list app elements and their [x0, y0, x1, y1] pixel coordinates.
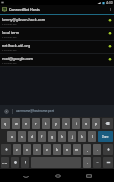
button[interactable]: netlhack.util.org [0, 41, 114, 53]
staticText: r [35, 121, 37, 126]
button[interactable]: ?123 [1, 157, 9, 168]
button[interactable]: z [13, 144, 21, 155]
button[interactable]: Back [19, 169, 32, 182]
button[interactable]: n [63, 144, 71, 155]
button[interactable]: p [92, 118, 100, 129]
button[interactable]: c [33, 144, 41, 155]
button[interactable]: Recent apps [82, 169, 95, 182]
button[interactable]: x [23, 144, 31, 155]
staticText: username@hostname:port [16, 109, 54, 113]
staticText: o [85, 121, 88, 126]
staticText: g [51, 134, 54, 139]
staticText: s [21, 134, 23, 139]
staticText: 3 minutes ago [2, 36, 17, 39]
button[interactable]: More options [106, 5, 114, 14]
button[interactable]: q [1, 118, 10, 129]
button[interactable]: l [88, 131, 96, 142]
button[interactable]: g [48, 131, 56, 142]
button[interactable]: Delete [102, 118, 113, 129]
button[interactable]: f [38, 131, 46, 142]
staticText: Done [102, 135, 109, 139]
button[interactable]: j [68, 131, 76, 142]
button[interactable]: v [43, 144, 51, 155]
button[interactable]: k [78, 131, 86, 142]
staticText: local term [2, 30, 20, 35]
staticText: w [15, 121, 18, 126]
button[interactable]: w [12, 118, 20, 129]
staticText: t [45, 121, 47, 126]
button[interactable]: s [18, 131, 26, 142]
staticText: q [4, 121, 7, 126]
button[interactable]: . [83, 157, 91, 168]
staticText: p [95, 121, 98, 126]
button[interactable]: local term [0, 28, 114, 40]
button[interactable]: Input settings [3, 108, 10, 115]
staticText: y [55, 121, 57, 126]
staticText: e [25, 121, 27, 126]
button[interactable]: Emoji [11, 157, 19, 168]
staticText: d [31, 134, 34, 139]
staticText: z [16, 147, 18, 152]
staticText: l [92, 134, 93, 139]
staticText: netlhack.util.org [2, 43, 31, 48]
button[interactable]: , [83, 144, 91, 155]
staticText: kenny@gibson.hack.com [2, 17, 46, 22]
button[interactable]: r [32, 118, 40, 129]
staticText: root@google.com [2, 56, 34, 61]
button[interactable]: Home [51, 169, 64, 182]
staticText: f [41, 134, 43, 139]
staticText: ?123 [2, 161, 8, 164]
staticText: 3 minutes ago [2, 62, 17, 65]
staticText: k [81, 134, 83, 139]
button[interactable]: e [22, 118, 30, 129]
staticText: h [61, 134, 64, 139]
button[interactable]: Shift [1, 144, 11, 155]
button[interactable]: t [42, 118, 50, 129]
button[interactable]: root@google.com [0, 54, 114, 66]
staticText: a [11, 134, 13, 139]
button[interactable]: Done [98, 131, 113, 142]
button[interactable]: m [73, 144, 81, 155]
button[interactable]: u [62, 118, 70, 129]
staticText: n [66, 147, 69, 152]
staticText: . [97, 147, 98, 152]
staticText: 3 minutes ago [2, 49, 17, 52]
staticText: m [75, 147, 79, 152]
staticText: u [65, 121, 68, 126]
button[interactable]: . [93, 144, 101, 155]
button[interactable]: Change keyboard [103, 157, 113, 168]
button[interactable]: Shift [103, 144, 113, 155]
button[interactable]: kenny@gibson.hack.com [0, 15, 114, 27]
button[interactable]: h [58, 131, 66, 142]
button[interactable]: Voice input [21, 157, 29, 168]
button[interactable]: Dash [93, 157, 101, 168]
staticText: 3 minutes ago [2, 23, 17, 26]
staticText: . [87, 160, 88, 165]
button[interactable]: y [52, 118, 60, 129]
button[interactable]: i [72, 118, 80, 129]
button[interactable]: d [28, 131, 36, 142]
button[interactable]: a [7, 131, 16, 142]
staticText: , [87, 147, 88, 152]
staticText: 4:30 [106, 0, 113, 5]
button[interactable]: o [82, 118, 90, 129]
staticText: i [76, 121, 77, 126]
staticText: v [46, 147, 48, 152]
staticText: x [26, 147, 28, 152]
staticText: b [56, 147, 59, 152]
staticText: ConnectBot Hosts [9, 7, 40, 12]
button[interactable]: b [53, 144, 61, 155]
staticText: j [72, 134, 73, 139]
staticText: c [36, 147, 38, 152]
